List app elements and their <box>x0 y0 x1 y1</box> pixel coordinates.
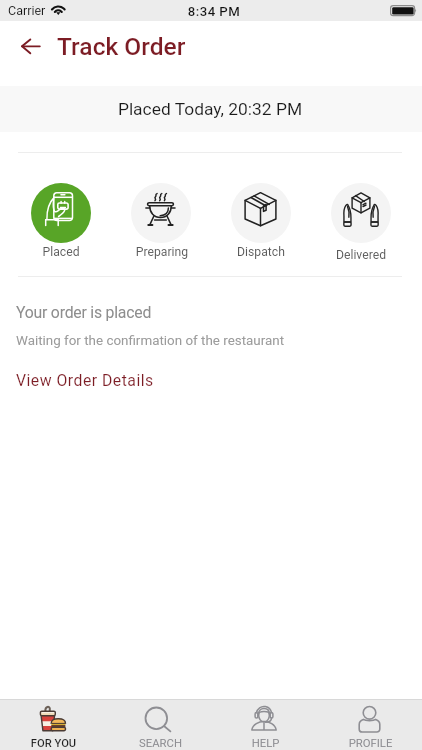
staticText: FOR YOU <box>1 737 106 750</box>
staticText: Placed Today, 20:32 PM <box>60 99 360 119</box>
staticText: PROFILE <box>318 737 422 750</box>
staticText: Carrier <box>8 3 46 18</box>
button[interactable]: View Order Details <box>16 0 154 390</box>
button[interactable] <box>211 699 317 750</box>
button[interactable]: Track Order <box>57 0 186 61</box>
button[interactable] <box>231 183 291 243</box>
button[interactable] <box>106 699 212 750</box>
button[interactable] <box>31 183 91 243</box>
staticText: HELP <box>213 737 318 750</box>
staticText: Your order is placed <box>16 303 152 322</box>
staticText: SEARCH <box>108 737 213 750</box>
staticText: Placed <box>1 245 121 259</box>
button[interactable] <box>0 699 106 750</box>
staticText: Preparing <box>102 245 222 259</box>
button[interactable]: Back <box>14 28 48 62</box>
button[interactable] <box>331 183 391 243</box>
staticText: Waiting for the confirmation of the rest… <box>16 333 285 349</box>
staticText: Dispatch <box>201 245 321 259</box>
staticText: 8:34 PM <box>154 4 274 19</box>
button[interactable] <box>317 699 422 750</box>
staticText: Delivered <box>301 248 421 262</box>
button[interactable] <box>131 183 191 243</box>
